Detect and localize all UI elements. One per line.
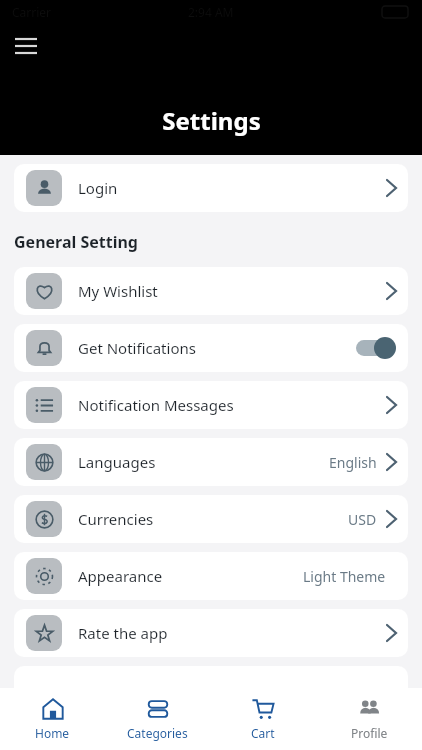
staticText: Settings (162, 104, 261, 137)
staticText: Categories (127, 725, 188, 741)
staticText: USD (348, 510, 377, 529)
button[interactable]: Currencies (14, 495, 408, 543)
button[interactable]: Categories (105, 688, 210, 750)
staticText: Notification Messages (78, 395, 234, 415)
staticText: English (329, 453, 377, 472)
staticText: Home (35, 725, 70, 741)
button[interactable]: Rate the app (14, 609, 408, 657)
staticText: 2:94 AM (188, 4, 234, 20)
staticText: Login (78, 178, 118, 198)
button[interactable]: Home (0, 688, 105, 750)
button[interactable]: Menu (10, 32, 42, 60)
button[interactable]: Login (14, 164, 408, 212)
staticText: Carrier (12, 4, 52, 20)
staticText: Currencies (78, 509, 154, 529)
button[interactable]: Notification Messages (14, 381, 408, 429)
button[interactable]: Languages (14, 438, 408, 486)
button[interactable]: Appearance (14, 552, 408, 600)
staticText: Languages (78, 452, 156, 472)
staticText: Get Notifications (78, 338, 196, 358)
staticText: My Wishlist (78, 281, 158, 301)
button[interactable]: Get Notifications (14, 324, 408, 372)
staticText: Light Theme (303, 567, 386, 586)
staticText: Rate the app (78, 623, 168, 643)
staticText: Cart (251, 725, 275, 741)
button[interactable]: My Wishlist (14, 267, 408, 315)
staticText: Appearance (78, 566, 163, 586)
button[interactable]: Cart (210, 688, 316, 750)
staticText: Profile (351, 725, 388, 741)
staticText: General Setting (14, 231, 138, 253)
button[interactable]: Profile (316, 688, 422, 750)
